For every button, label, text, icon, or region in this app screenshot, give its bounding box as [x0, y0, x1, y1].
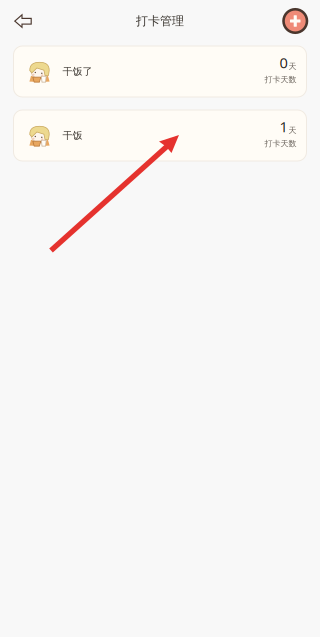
staticText: 0 [279, 52, 287, 72]
staticText: 天 [288, 61, 296, 71]
staticText: 打卡天数 [264, 138, 296, 148]
button[interactable]: 干饭了 [13, 46, 306, 97]
staticText: 打卡天数 [264, 74, 296, 84]
staticText: 打卡管理 [136, 13, 184, 28]
staticText: 干饭 [62, 129, 82, 142]
staticText: 干饭了 [62, 65, 92, 78]
button[interactable]: Add [283, 0, 320, 42]
button[interactable]: Back [0, 0, 42, 42]
staticText: 天 [288, 125, 296, 135]
staticText: 1 [279, 116, 287, 136]
button[interactable]: 干饭 [13, 110, 306, 161]
